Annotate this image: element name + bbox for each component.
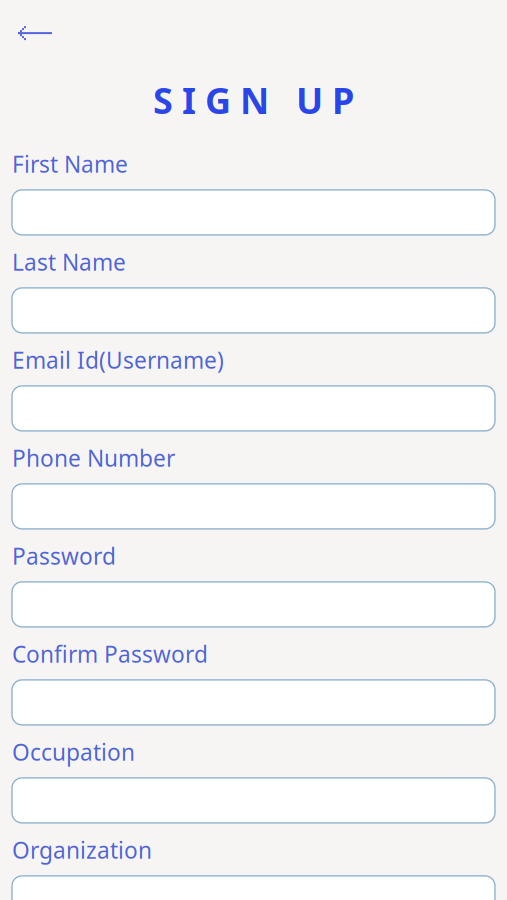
- button[interactable]: First Name: [12, 190, 495, 235]
- staticText: First Name: [12, 149, 128, 179]
- staticText: S I G N U P: [153, 76, 354, 124]
- staticText: Confirm Password: [12, 639, 208, 669]
- button[interactable]: Password: [12, 582, 495, 627]
- staticText: Email Id(Username): [12, 345, 224, 375]
- button[interactable]: Last Name: [12, 288, 495, 333]
- staticText: Last Name: [12, 247, 126, 277]
- button[interactable]: Email Id(Username): [12, 386, 495, 431]
- button[interactable]: Occupation: [12, 778, 495, 823]
- staticText: Phone Number: [12, 443, 175, 473]
- staticText: Organization: [12, 835, 152, 865]
- staticText: Occupation: [12, 737, 135, 767]
- button[interactable]: Confirm Password: [12, 680, 495, 725]
- button[interactable]: Organization: [12, 876, 495, 900]
- staticText: Password: [12, 541, 116, 571]
- button[interactable]: Back: [4, 12, 66, 54]
- button[interactable]: Phone Number: [12, 484, 495, 529]
